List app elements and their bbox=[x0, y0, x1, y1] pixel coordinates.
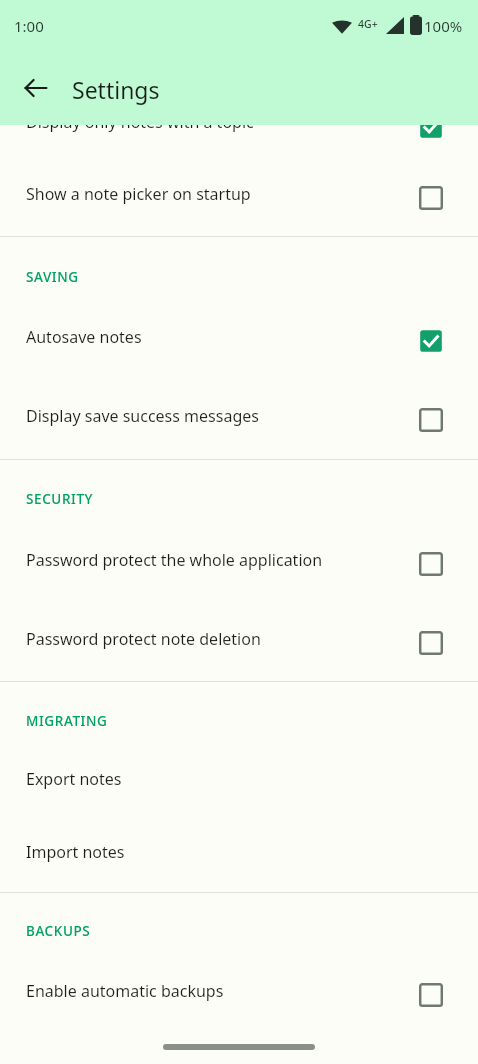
button[interactable]: Toggle bbox=[418, 407, 444, 433]
button[interactable] bbox=[0, 305, 478, 377]
button[interactable] bbox=[0, 150, 478, 245]
staticText: Password protect the whole application bbox=[26, 549, 323, 571]
button[interactable] bbox=[0, 385, 478, 457]
button[interactable] bbox=[0, 528, 478, 600]
button[interactable] bbox=[0, 962, 478, 1030]
button[interactable] bbox=[0, 822, 478, 890]
button[interactable]: Toggle bbox=[418, 630, 444, 656]
staticText: Display save success messages bbox=[26, 405, 259, 427]
staticText: SECURITY bbox=[26, 490, 94, 508]
button[interactable]: Toggle bbox=[418, 982, 444, 1008]
staticText: Display only notes with a topic bbox=[26, 111, 254, 133]
staticText: Password protect note deletion bbox=[26, 628, 261, 650]
staticText: MIGRATING bbox=[26, 712, 108, 730]
staticText: Import notes bbox=[26, 841, 125, 863]
button[interactable] bbox=[0, 750, 478, 818]
staticText: 4G+ bbox=[358, 17, 378, 31]
staticText: 100% bbox=[424, 16, 463, 36]
button[interactable]: Toggle bbox=[418, 185, 444, 211]
staticText: Show a note picker on startup bbox=[26, 183, 251, 205]
staticText: Enable automatic backups bbox=[26, 980, 224, 1002]
staticText: 1:00 bbox=[14, 16, 44, 36]
staticText: BACKUPS bbox=[26, 922, 91, 940]
button[interactable]: Back bbox=[16, 68, 56, 108]
button[interactable]: Toggle bbox=[418, 328, 444, 354]
button[interactable]: Toggle bbox=[418, 114, 444, 140]
staticText: Autosave notes bbox=[26, 326, 142, 348]
button[interactable] bbox=[0, 607, 478, 679]
staticText: Export notes bbox=[26, 768, 122, 790]
button[interactable]: Toggle bbox=[418, 551, 444, 577]
staticText: SAVING bbox=[26, 268, 79, 286]
staticText: Settings bbox=[72, 74, 160, 105]
